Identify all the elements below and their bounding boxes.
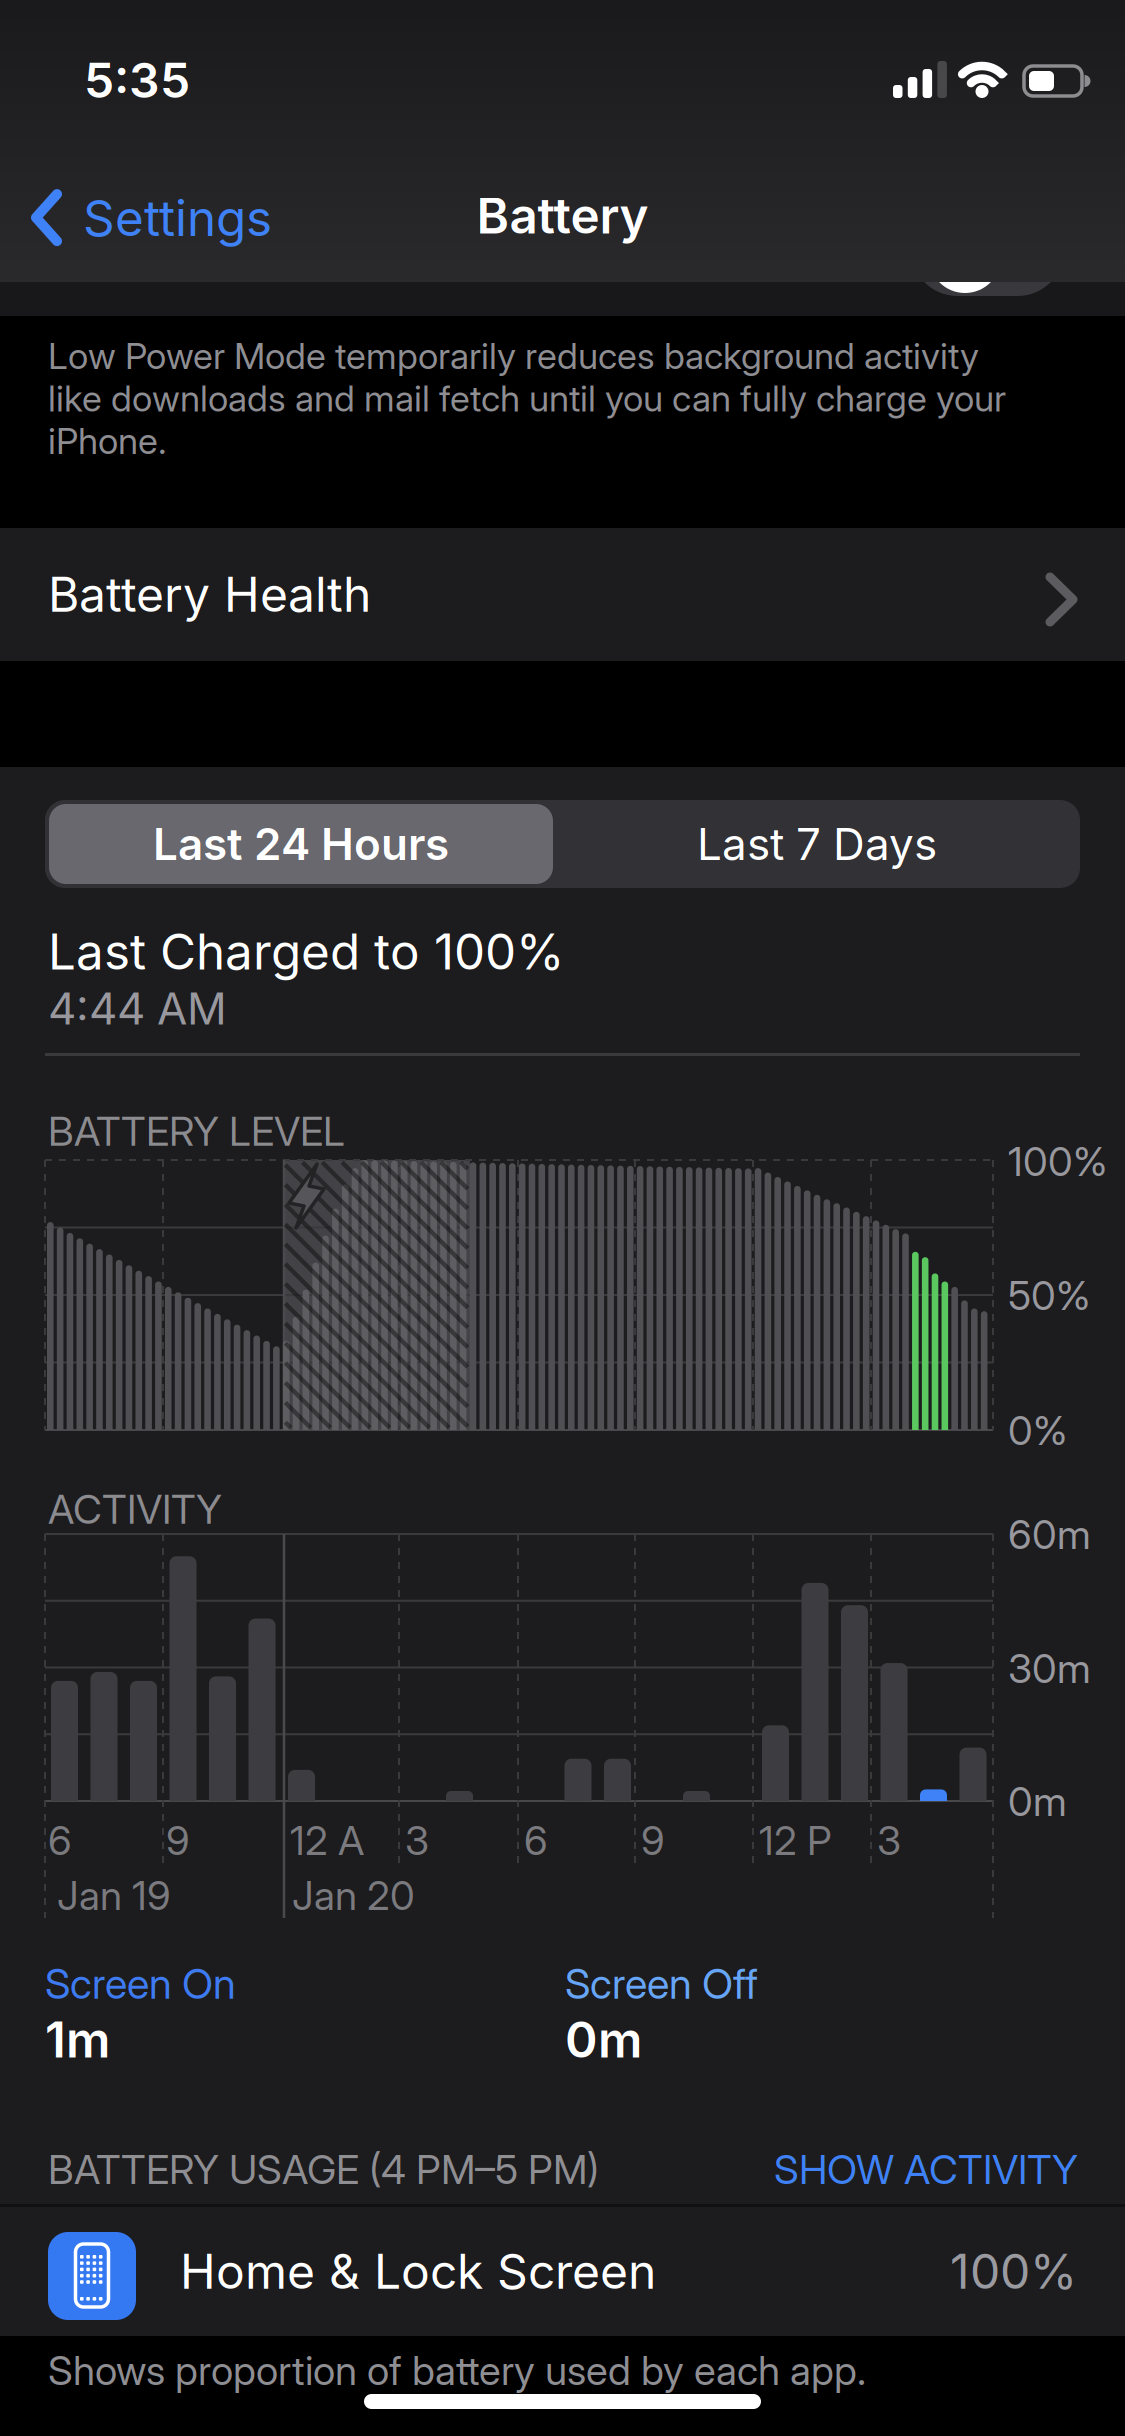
staticText: 3: [405, 1817, 429, 1864]
staticText: 30m: [1008, 1645, 1091, 1692]
staticText: Last 24 Hours: [153, 818, 449, 870]
staticText: 0m: [565, 2010, 642, 2069]
staticText: 9: [166, 1817, 190, 1864]
staticText: 1m: [45, 2010, 110, 2069]
button[interactable]: Last 24 Hours: [49, 804, 553, 884]
button[interactable]: Low Power Mode: [0, 282, 1125, 316]
staticText: BATTERY LEVEL: [48, 1108, 345, 1155]
staticText: 5:35: [84, 52, 190, 109]
staticText: 4:44 AM: [48, 983, 227, 1034]
staticText: Last Charged to 100%: [48, 922, 564, 981]
staticText: 0m: [1008, 1778, 1067, 1825]
staticText: 100%: [1008, 1138, 1107, 1185]
staticText: Screen Off: [565, 1959, 758, 2008]
staticText: ACTIVITY: [48, 1486, 222, 1533]
staticText: BATTERY USAGE (4 PM–5 PM): [48, 2146, 599, 2193]
staticText: Battery: [476, 186, 648, 245]
staticText: 100%: [950, 2243, 1077, 2300]
staticText: 9: [641, 1817, 665, 1864]
staticText: 12 P: [759, 1817, 832, 1864]
staticText: 0%: [1008, 1407, 1067, 1454]
button[interactable]: Battery Health: [0, 0, 1125, 133]
staticText: 50%: [1008, 1272, 1090, 1319]
staticText: Jan 20: [292, 1872, 415, 1919]
button[interactable]: Last 7 Days: [557, 800, 1077, 888]
button[interactable]: Home & Lock Screen: [0, 2205, 1125, 2336]
staticText: Shows proportion of battery used by each…: [48, 2347, 866, 2394]
button[interactable]: SHOW ACTIVITY: [478, 2146, 1078, 2193]
staticText: Low Power Mode temporarily reduces backg…: [48, 335, 1006, 462]
staticText: Settings: [83, 189, 272, 247]
staticText: 12 A: [290, 1817, 364, 1864]
staticText: 6: [48, 1817, 72, 1864]
staticText: 60m: [1008, 1511, 1091, 1558]
staticText: 3: [877, 1817, 901, 1864]
staticText: Jan 19: [57, 1872, 171, 1919]
staticText: SHOW ACTIVITY: [774, 2146, 1078, 2193]
staticText: Screen On: [45, 1959, 236, 2008]
staticText: Last 7 Days: [697, 818, 937, 870]
staticText: Battery Health: [48, 566, 371, 623]
staticText: 6: [524, 1817, 548, 1864]
button[interactable]: Back to Settings: [33, 189, 272, 247]
staticText: Home & Lock Screen: [180, 2243, 656, 2300]
